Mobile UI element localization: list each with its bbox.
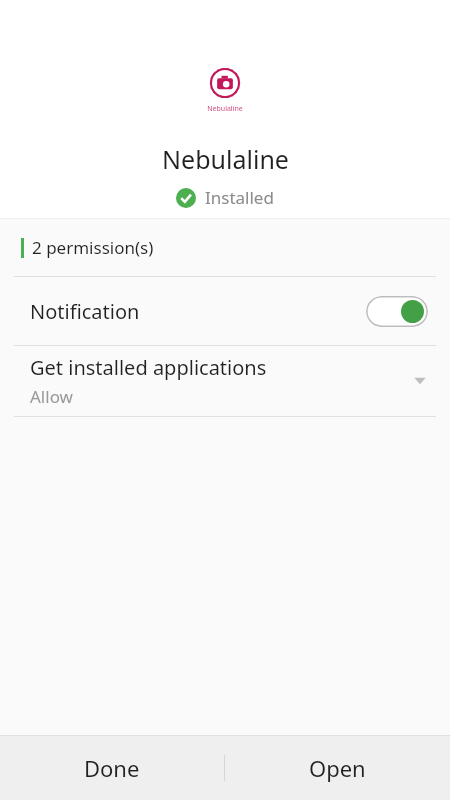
staticText: Notification [30,298,366,325]
staticText: Done [84,753,140,783]
staticText: 2 permission(s) [32,236,154,259]
staticText: Installed [205,186,274,209]
staticText: Get installed applications [30,354,267,381]
button[interactable]: Open [225,736,450,800]
staticText: Nebulaline [162,142,289,176]
staticText: Allow [30,385,73,408]
button[interactable]: Notification toggle, on [366,296,428,327]
staticText: Nebulaline [207,104,243,114]
staticText: Open [309,753,366,783]
button[interactable]: Notification [0,277,450,345]
button[interactable]: Done [0,736,224,800]
button[interactable]: Get installed applications [0,346,450,416]
